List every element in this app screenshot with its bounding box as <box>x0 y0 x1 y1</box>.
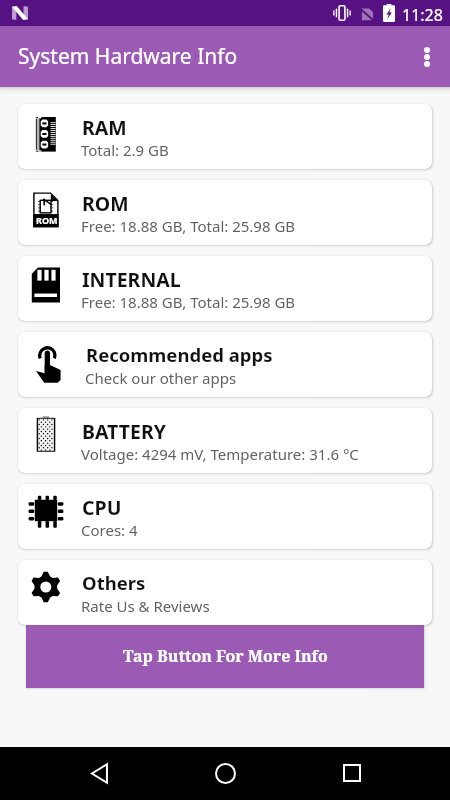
staticText: CPU <box>82 494 122 521</box>
staticText: 11:28 <box>402 4 443 26</box>
button[interactable]: Others <box>18 560 432 625</box>
button[interactable]: RAM <box>18 104 432 169</box>
staticText: INTERNAL <box>82 266 181 293</box>
button[interactable]: BATTERY <box>18 408 432 473</box>
staticText: Others <box>82 570 146 595</box>
staticText: Free: 18.88 GB, Total: 25.98 GB <box>81 216 296 236</box>
staticText: ROM <box>36 214 58 226</box>
staticText: Check our other apps <box>85 368 237 388</box>
staticText: Voltage: 4294 mV, Temperature: 31.6 °C <box>81 444 359 464</box>
button[interactable]: CPU <box>18 484 432 549</box>
button[interactable]: Recents <box>328 749 376 797</box>
staticText: ROM <box>82 190 129 217</box>
staticText: BATTERY <box>82 418 166 445</box>
staticText: System Hardware Info <box>18 42 238 71</box>
button[interactable]: Recommended apps <box>18 332 432 397</box>
staticText: Cores: 4 <box>81 520 138 540</box>
staticText: Tap Button For More Info <box>123 645 328 667</box>
button[interactable]: More options <box>403 33 450 81</box>
button[interactable]: Home <box>201 749 249 797</box>
staticText: Total: 2.9 GB <box>81 140 169 160</box>
staticText: RAM <box>82 114 127 141</box>
staticText: Recommended apps <box>86 342 273 367</box>
button[interactable]: INTERNAL <box>18 256 432 321</box>
button[interactable]: Back <box>75 749 123 797</box>
button[interactable]: ROM <box>18 180 432 245</box>
button[interactable]: Tap Button For More Info <box>26 625 424 688</box>
staticText: Rate Us & Reviews <box>81 596 210 616</box>
staticText: Free: 18.88 GB, Total: 25.98 GB <box>81 292 296 312</box>
